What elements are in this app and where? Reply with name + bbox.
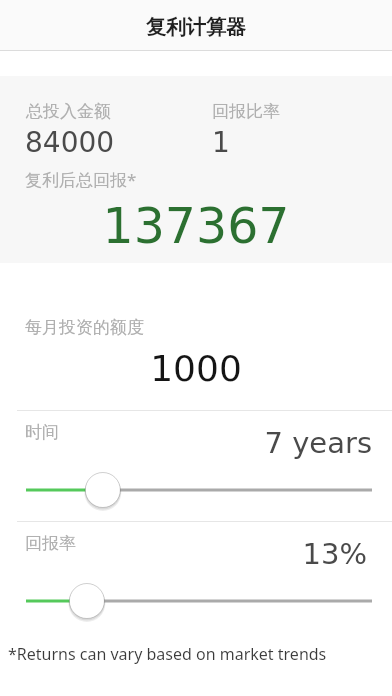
- staticText: 复利后总回报*: [25, 168, 137, 191]
- staticText: 回报比率: [212, 101, 280, 122]
- staticText: 复利计算器: [146, 15, 246, 40]
- button[interactable]: 复利计算器: [0, 0, 392, 50]
- staticText: 总投入金额: [26, 101, 111, 122]
- staticText: 回报率: [25, 533, 76, 554]
- staticText: 7 years: [0, 426, 372, 460]
- staticText: 84000: [25, 126, 115, 159]
- button[interactable]: 回报率: [0, 522, 392, 632]
- staticText: 每月投资的额度: [25, 317, 144, 338]
- staticText: 13%: [0, 537, 367, 571]
- other: 回报率: [0, 572, 392, 622]
- staticText: 137367: [0, 198, 392, 255]
- staticText: *Returns can vary based on market trends: [8, 643, 327, 665]
- staticText: 1: [212, 126, 230, 159]
- staticText: 1000: [0, 348, 392, 390]
- staticText: 时间: [25, 422, 59, 443]
- other: 时间: [0, 461, 392, 511]
- button[interactable]: 时间: [0, 411, 392, 521]
